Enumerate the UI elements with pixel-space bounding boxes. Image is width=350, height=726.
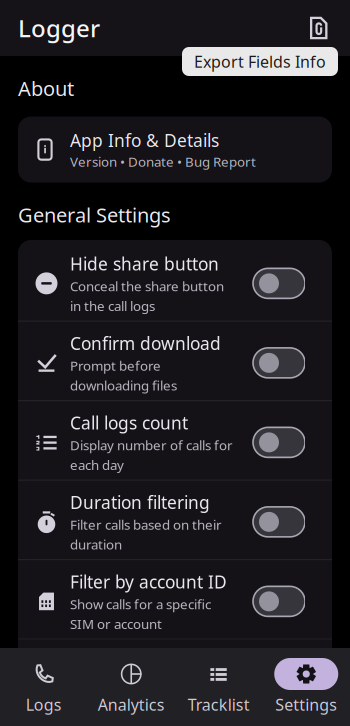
button[interactable]: Confirm download xyxy=(18,322,332,400)
button[interactable]: Duration filtering xyxy=(18,481,332,559)
staticText: Tracklist xyxy=(188,694,250,715)
button[interactable]: Tracklist xyxy=(175,658,262,715)
button[interactable]: Logs xyxy=(0,658,87,715)
staticText: General Settings xyxy=(18,202,171,228)
staticText: Prompt before downloading files xyxy=(70,357,177,394)
staticText: Conceal the share button in the call log… xyxy=(70,277,224,315)
button[interactable]: Filter by account ID xyxy=(18,560,332,639)
button[interactable]: Analytics xyxy=(87,658,175,715)
staticText: Duration filtering xyxy=(70,491,210,514)
staticText: Show calls for a specific SIM or account xyxy=(70,595,211,633)
staticText: Hide share button xyxy=(70,252,219,275)
button[interactable]: Settings xyxy=(262,658,350,715)
staticText: Analytics xyxy=(98,694,165,715)
button[interactable]: Hide share button xyxy=(18,242,332,321)
staticText: Display number of calls for each day xyxy=(70,436,233,474)
button[interactable]: Call logs count xyxy=(18,401,332,480)
staticText: About xyxy=(18,75,74,102)
staticText: Call logs count xyxy=(70,411,188,434)
staticText: Logs xyxy=(26,694,62,715)
staticText: Confirm download xyxy=(70,332,221,355)
staticText: Filter by account ID xyxy=(70,570,227,593)
staticText: Version • Donate • Bug Report xyxy=(70,153,256,170)
staticText: Logger xyxy=(18,12,100,44)
staticText: Settings xyxy=(275,694,337,715)
staticText: App Info & Details xyxy=(70,129,219,152)
button[interactable]: App Info & Details xyxy=(18,117,332,183)
button[interactable]: Export Fields Info xyxy=(301,10,336,45)
staticText: Export Fields Info xyxy=(194,51,326,72)
staticText: Filter calls based on their duration xyxy=(70,516,222,553)
